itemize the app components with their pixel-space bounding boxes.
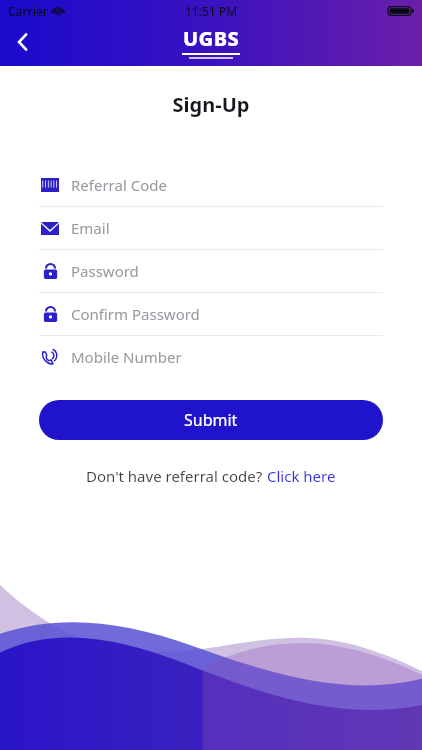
button[interactable]: Email [39, 207, 383, 250]
staticText: Click here [267, 466, 336, 486]
staticText: Password [71, 261, 139, 281]
staticText: Email [71, 218, 110, 238]
staticText: 11:51 PM [185, 3, 238, 19]
button[interactable]: Submit [39, 400, 383, 440]
staticText: Mobile Number [71, 347, 182, 367]
staticText: Submit [184, 409, 238, 431]
button[interactable]: Confirm Password [39, 293, 383, 336]
button[interactable]: Click here [267, 466, 336, 486]
staticText: Referral Code [71, 175, 167, 195]
button[interactable]: Mobile Number [39, 336, 383, 378]
staticText: Don't have referral code? [86, 466, 267, 486]
staticText: Confirm Password [71, 304, 200, 324]
button[interactable]: Password [39, 250, 383, 293]
staticText: Sign-Up [0, 91, 422, 118]
staticText: UGBS [183, 25, 240, 52]
button[interactable]: Referral Code [39, 164, 383, 207]
button[interactable]: Back [0, 19, 46, 65]
staticText: Carrier [8, 3, 48, 19]
